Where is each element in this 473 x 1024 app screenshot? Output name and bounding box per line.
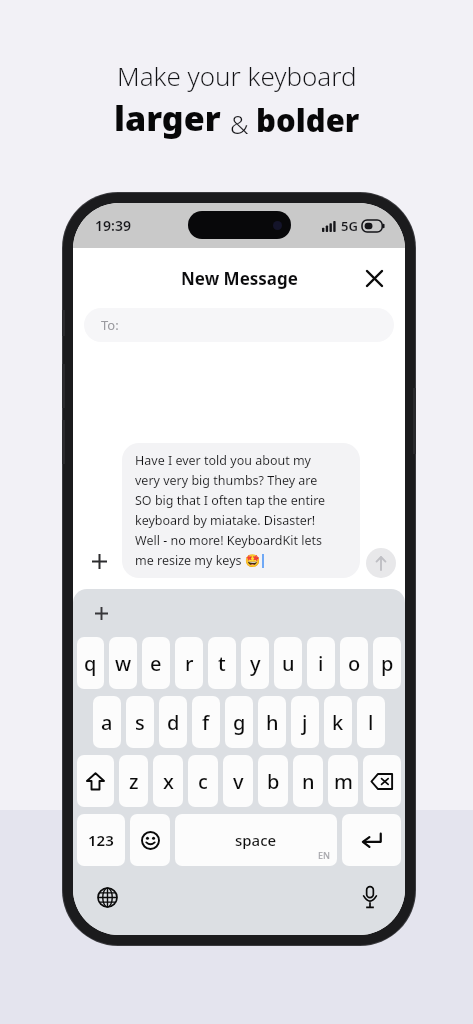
staticText: h (266, 709, 279, 736)
staticText: v (233, 768, 244, 795)
staticText: x (163, 768, 174, 795)
staticText: 123 (88, 830, 114, 850)
button[interactable]: e (142, 637, 170, 689)
button[interactable]: f (192, 696, 220, 748)
staticText: bolder (256, 99, 360, 141)
staticText: d (167, 709, 180, 736)
button[interactable]: To: (84, 308, 394, 342)
staticText: & (230, 106, 256, 141)
staticText: m (334, 768, 353, 795)
staticText: keyboard by miatake. Disaster! (135, 512, 316, 529)
button[interactable]: Add attachment (82, 544, 116, 578)
staticText: u (282, 650, 295, 677)
staticText: r (185, 650, 194, 677)
staticText: a (101, 709, 113, 736)
button[interactable]: d (159, 696, 187, 748)
staticText: EN (318, 849, 330, 861)
button[interactable]: Dictation (357, 884, 383, 910)
staticText: k (332, 709, 344, 736)
button[interactable]: space (175, 814, 337, 866)
button[interactable]: s (126, 696, 154, 748)
staticText: larger (114, 95, 230, 141)
staticText: Well - no more! KeyboardKit lets (135, 532, 323, 549)
button[interactable]: y (241, 637, 269, 689)
button[interactable]: n (293, 755, 323, 807)
staticText: Have I ever told you about my (135, 452, 311, 469)
button[interactable]: w (109, 637, 137, 689)
button[interactable]: r (175, 637, 203, 689)
staticText: n (302, 768, 315, 795)
staticText: 19:39 (95, 216, 131, 235)
button[interactable]: o (340, 637, 368, 689)
staticText: me resize my keys 🤩 (135, 552, 261, 569)
button[interactable]: Send (366, 548, 396, 578)
staticText: l (368, 709, 374, 736)
staticText: To: (101, 316, 119, 334)
button[interactable]: Close (357, 261, 391, 295)
staticText: e (150, 650, 162, 677)
staticText: w (115, 650, 132, 677)
staticText: j (302, 709, 308, 736)
button[interactable]: Emoji (130, 814, 170, 866)
staticText: New Message (181, 267, 298, 290)
staticText: q (84, 650, 97, 677)
button[interactable]: t (208, 637, 236, 689)
staticText: b (267, 768, 280, 795)
staticText: 5G (341, 217, 358, 235)
button[interactable]: x (153, 755, 183, 807)
button[interactable]: 123 (77, 814, 125, 866)
button[interactable]: q (77, 637, 104, 689)
button[interactable]: h (258, 696, 286, 748)
button[interactable]: j (291, 696, 319, 748)
staticText: very very big thumbs? They are (135, 472, 318, 489)
staticText: f (202, 709, 210, 736)
staticText: SO big that I often tap the entire (135, 492, 326, 509)
button[interactable]: Add (90, 602, 112, 624)
button[interactable]: l (357, 696, 385, 748)
button[interactable]: p (373, 637, 401, 689)
button[interactable]: v (223, 755, 253, 807)
staticText: Make your keyboard (117, 58, 357, 93)
staticText: t (218, 650, 226, 677)
button[interactable]: a (93, 696, 121, 748)
button[interactable]: k (324, 696, 352, 748)
staticText: space (235, 830, 277, 850)
button[interactable]: z (119, 755, 148, 807)
button[interactable]: g (225, 696, 253, 748)
staticText: p (381, 650, 394, 677)
staticText: i (318, 650, 324, 677)
staticText: y (250, 650, 261, 677)
staticText: c (198, 768, 208, 795)
staticText: z (129, 768, 139, 795)
staticText: s (135, 709, 145, 736)
button[interactable]: c (188, 755, 218, 807)
button[interactable]: i (307, 637, 335, 689)
button[interactable]: Have I ever told you about my (122, 443, 360, 578)
button[interactable]: Backspace (363, 755, 401, 807)
button[interactable]: Return (342, 814, 401, 866)
button[interactable]: b (258, 755, 288, 807)
button[interactable]: Shift (77, 755, 114, 807)
button[interactable]: m (328, 755, 358, 807)
staticText: g (233, 709, 246, 736)
button[interactable]: Change language (94, 884, 120, 910)
button[interactable]: u (274, 637, 302, 689)
staticText: o (348, 650, 361, 677)
